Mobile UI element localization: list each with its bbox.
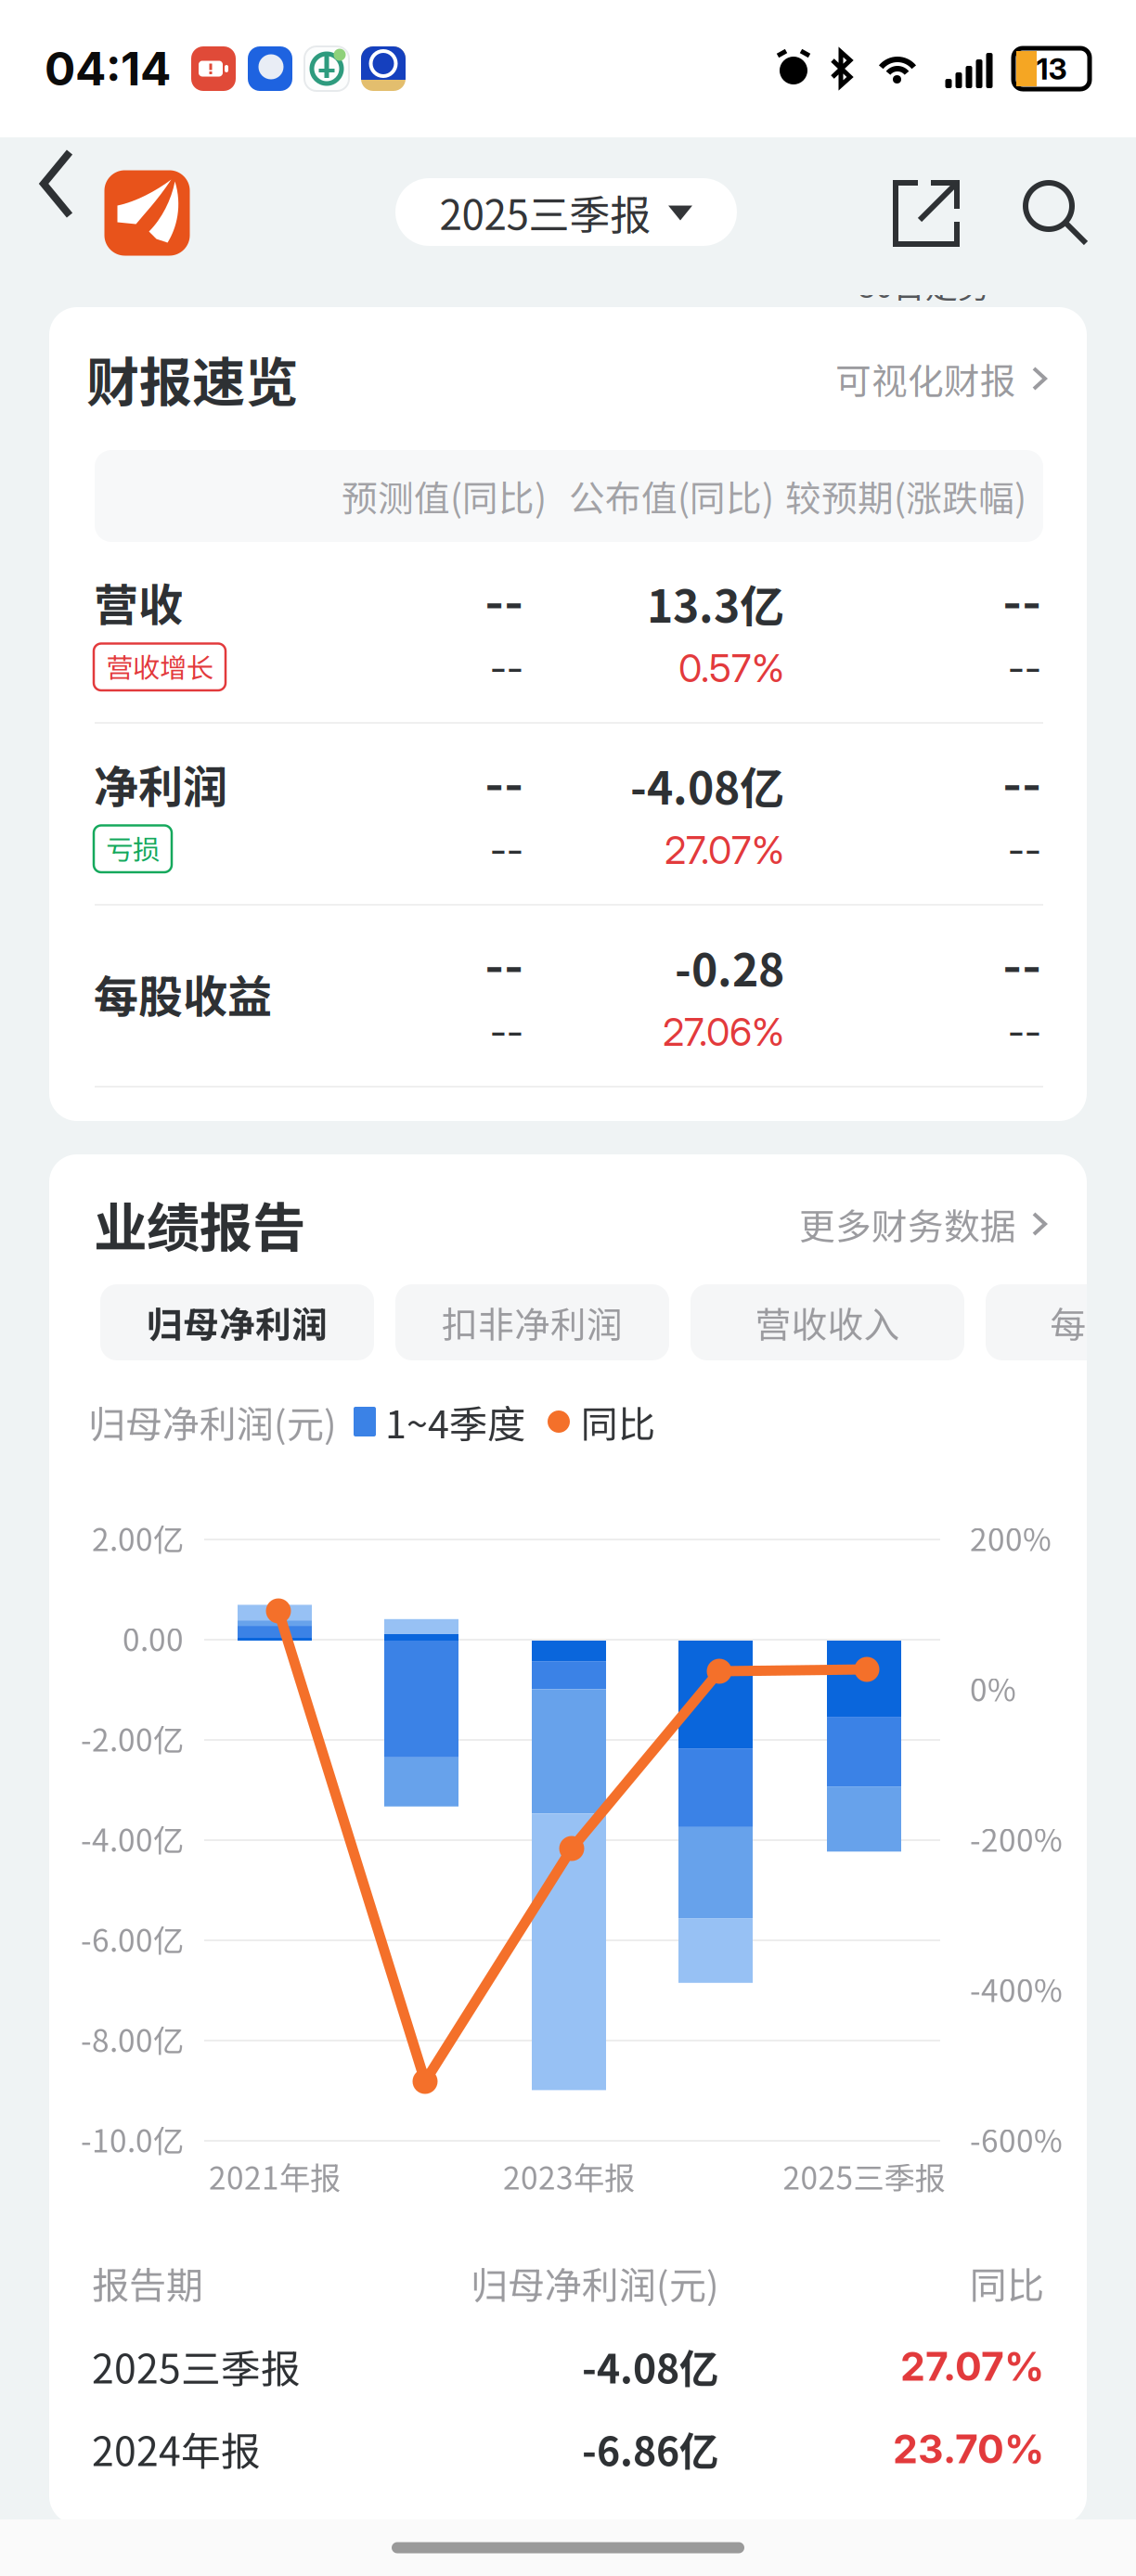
staticText: -8.96亿 — [582, 2515, 719, 2572]
staticText: 2025三季报 — [783, 2154, 945, 2199]
staticText: 0% — [970, 1666, 1016, 1710]
staticText: 业绩报告 — [94, 1185, 305, 1262]
staticText: 1~4季度 — [385, 1394, 525, 1449]
staticText: -4.08亿 — [582, 2338, 719, 2395]
staticText: 归母净利润 — [147, 1296, 328, 1348]
button[interactable]: 营收收入 — [691, 1284, 964, 1360]
button[interactable]: 2024年报 — [49, 2420, 1087, 2478]
staticText: 每股收益 — [94, 961, 272, 1026]
button[interactable]: 东方财富 — [104, 170, 190, 256]
staticText: 归母净利润(元) — [471, 2256, 719, 2310]
staticText: -- — [490, 827, 523, 873]
staticText: -- — [1008, 1009, 1041, 1055]
staticText: 2024年报 — [92, 2420, 261, 2478]
staticText: 27.07% — [665, 827, 784, 873]
staticText: -8.00亿 — [81, 2016, 184, 2061]
staticText: -2.00亿 — [81, 1716, 184, 1761]
staticText: -4.08亿 — [630, 753, 784, 817]
staticText: -- — [1008, 827, 1041, 873]
button[interactable]: 2025三季报 — [395, 178, 737, 246]
staticText: 营收收入 — [755, 1296, 900, 1348]
staticText: 0.57% — [678, 645, 784, 691]
staticText: -- — [1002, 578, 1041, 629]
button[interactable]: 可视化财报 — [835, 353, 1046, 405]
staticText: 营收增长 — [106, 646, 213, 686]
staticText: 同比 — [581, 1395, 655, 1448]
staticText: 营收 — [94, 570, 183, 634]
staticText: -0.28 — [675, 935, 784, 999]
staticText: 2025三季报 — [439, 182, 651, 242]
staticText: 23.70% — [893, 2425, 1044, 2473]
button[interactable]: 每股收益 — [986, 1284, 1136, 1360]
staticText: -- — [490, 1009, 523, 1055]
staticText: 每股收益 — [1050, 1296, 1136, 1348]
staticText: -- — [484, 760, 523, 811]
staticText: 80日走势 — [858, 261, 990, 307]
staticText: 2021年报 — [209, 2154, 341, 2199]
staticText: -- — [1002, 760, 1041, 811]
staticText: -600% — [970, 2117, 1063, 2161]
staticText: 归母净利润(元) — [88, 1395, 337, 1448]
staticText: 财报速览 — [86, 340, 298, 417]
staticText: -6.86亿 — [582, 2420, 719, 2478]
staticText: 报告期 — [92, 2256, 203, 2310]
staticText: 预测值(同比) — [342, 470, 547, 522]
staticText: 公布值(同比) — [569, 470, 774, 522]
button[interactable]: 2025三季报 — [49, 2338, 1087, 2395]
staticText: 净利润 — [94, 752, 227, 816]
staticText: 扣非净利润 — [442, 1296, 623, 1348]
staticText: 2023年报 — [503, 2154, 635, 2199]
staticText: 13 — [1036, 51, 1067, 87]
staticText: 2025三季报 — [92, 2338, 301, 2395]
button[interactable]: 2023年报 — [49, 2515, 1087, 2572]
staticText: 较预期(涨跌幅) — [785, 470, 1026, 522]
staticText: 04:14 — [45, 41, 171, 96]
staticText: 0.00 — [123, 1615, 184, 1660]
staticText: 200% — [970, 1515, 1052, 1560]
staticText: -6.00亿 — [81, 1916, 184, 1961]
button[interactable]: 扣非净利润 — [395, 1284, 669, 1360]
staticText: -4.00亿 — [81, 1816, 184, 1861]
staticText: -200% — [970, 1816, 1063, 1861]
staticText: 亏损 — [106, 828, 160, 868]
staticText: -- — [1002, 942, 1041, 992]
staticText: -- — [1008, 645, 1041, 691]
staticText: 27.06% — [663, 1009, 784, 1055]
button[interactable]: 更多财务数据 — [799, 1198, 1046, 1250]
staticText: 2.00亿 — [92, 1515, 184, 1560]
button[interactable]: 分享 — [882, 169, 971, 258]
staticText: 13.3亿 — [647, 571, 784, 635]
button[interactable]: 搜索 — [1012, 169, 1101, 258]
button[interactable]: 归母净利润 — [100, 1284, 374, 1360]
staticText: 同比 — [970, 2256, 1044, 2310]
staticText: -- — [484, 942, 523, 992]
staticText: 27.07% — [900, 2342, 1044, 2390]
staticText: -10.0亿 — [81, 2117, 184, 2161]
staticText: -- — [490, 645, 523, 691]
staticText: -400% — [970, 1966, 1063, 2011]
button[interactable]: 返回 — [8, 133, 110, 235]
staticText: 可视化财报 — [835, 353, 1016, 405]
staticText: 更多财务数据 — [799, 1198, 1016, 1250]
staticText: -- — [484, 578, 523, 629]
